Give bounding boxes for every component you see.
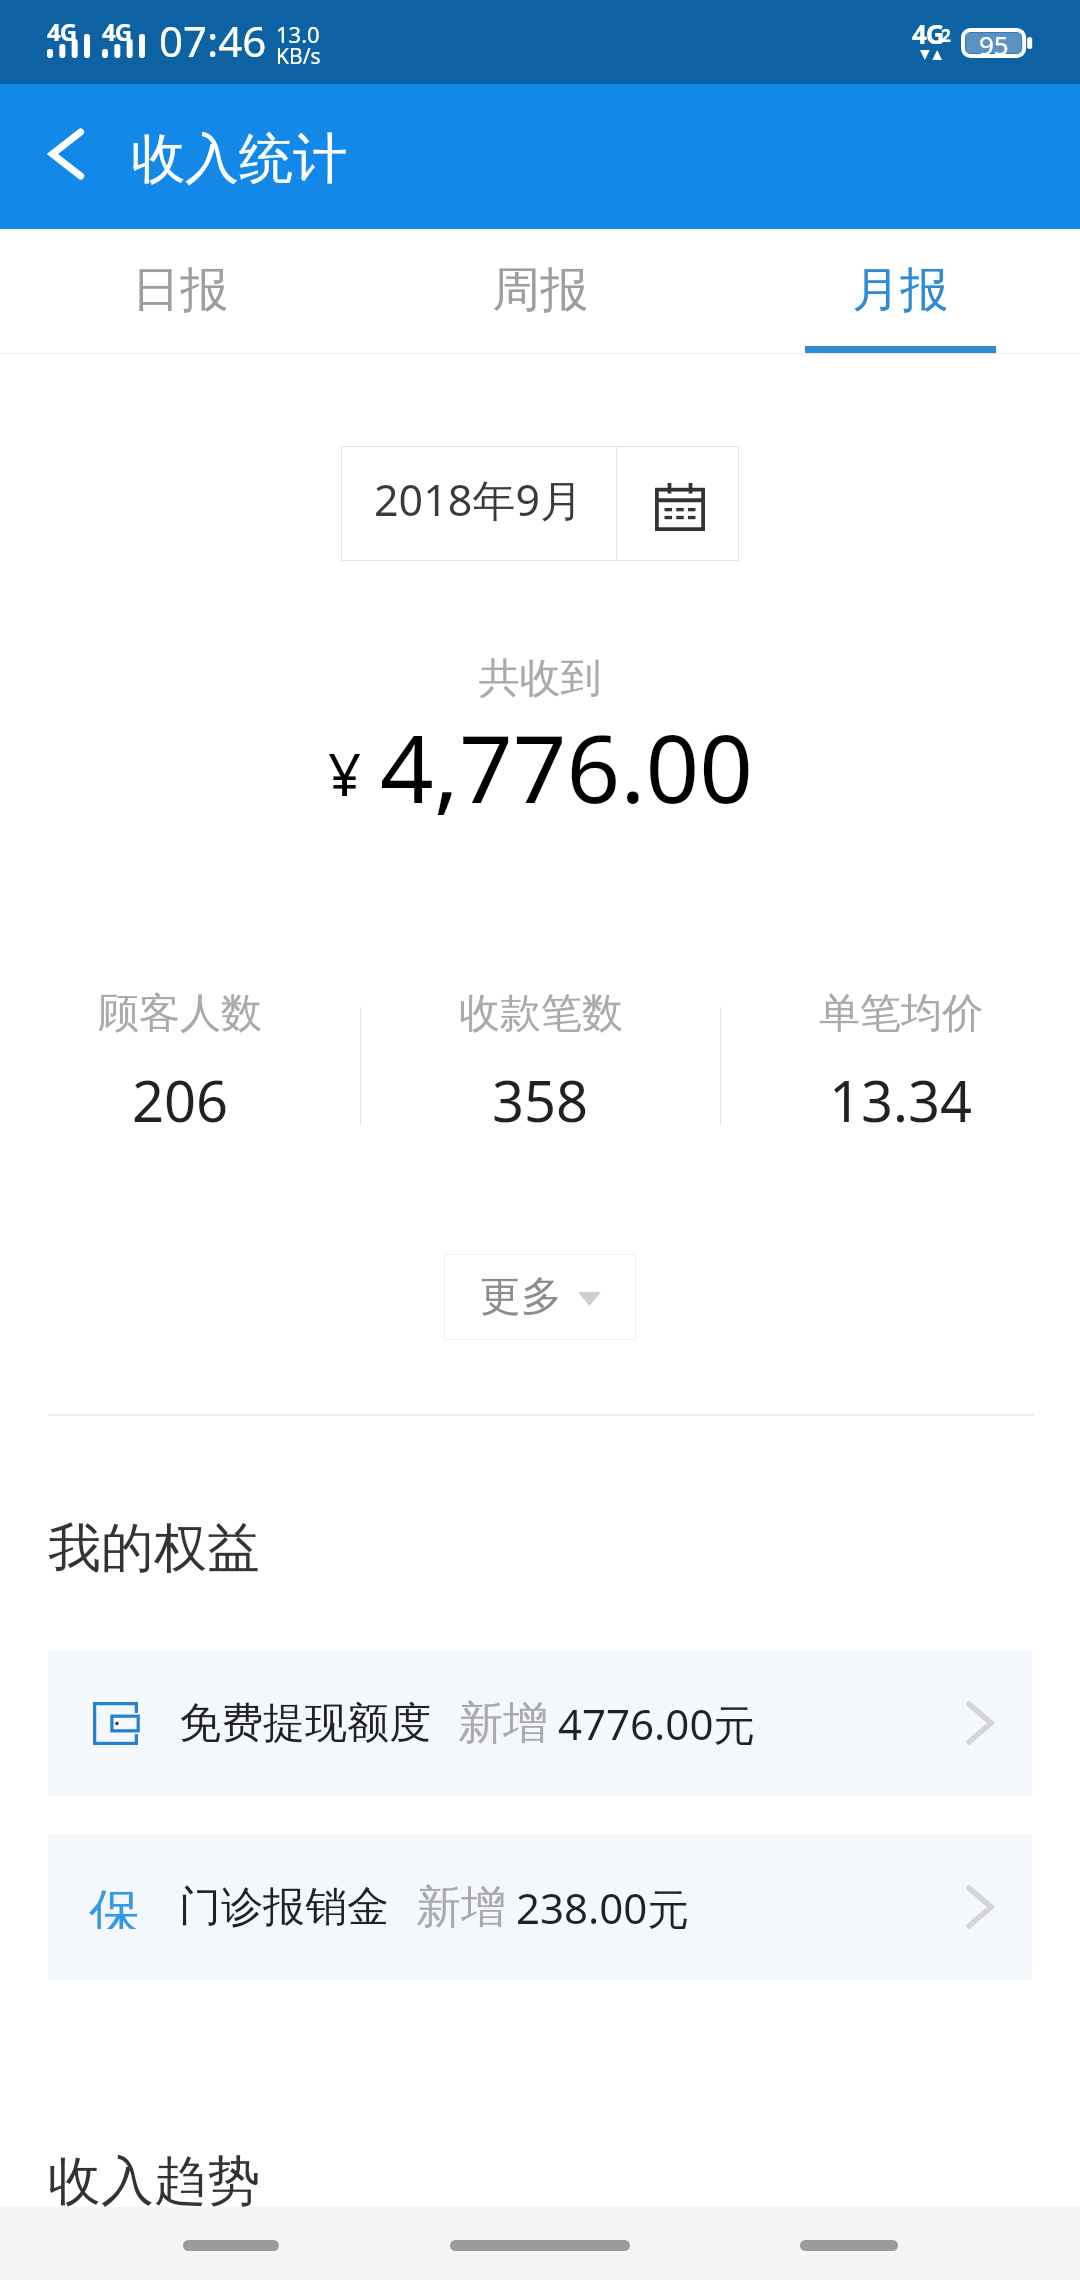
staticText: KB/s: [276, 42, 321, 71]
staticText: 周报: [492, 260, 588, 320]
button[interactable]: 单笔均价: [721, 986, 1080, 1146]
staticText: 206: [132, 1062, 229, 1138]
staticText: 更多: [480, 1271, 562, 1323]
staticText: 4G: [912, 16, 944, 51]
button[interactable]: 月报: [720, 229, 1080, 354]
staticText: 07:46: [159, 12, 267, 69]
staticText: 4G: [102, 15, 132, 48]
button[interactable]: Recent apps: [800, 2240, 898, 2251]
staticText: 4776.00元: [558, 1695, 756, 1752]
staticText: 2018年9月: [374, 470, 583, 529]
staticText: 358: [492, 1062, 589, 1138]
staticText: 保: [89, 1881, 137, 1929]
staticText: 4G: [47, 15, 77, 48]
staticText: 我的权益: [48, 1515, 260, 1582]
staticText: 4,776.00: [380, 703, 753, 831]
button[interactable]: 收款笔数: [361, 986, 720, 1146]
staticText: 单笔均价: [819, 988, 983, 1040]
button[interactable]: 周报: [360, 229, 720, 354]
button[interactable]: Pick month: [617, 446, 739, 561]
staticText: 新增: [416, 1879, 506, 1936]
staticText: ¥: [328, 734, 362, 813]
staticText: 收款笔数: [459, 988, 623, 1040]
staticText: 门诊报销金: [179, 1881, 389, 1934]
staticText: 日报: [132, 260, 228, 320]
staticText: 顾客人数: [98, 988, 262, 1040]
staticText: 13.34: [829, 1062, 973, 1138]
button[interactable]: 保: [48, 1834, 1032, 1980]
staticText: 月报: [852, 260, 948, 320]
button[interactable]: 更多: [444, 1254, 636, 1340]
other: Battery 95 percent: [961, 28, 1033, 58]
staticText: 收入统计: [131, 125, 347, 193]
staticText: 95: [979, 27, 1009, 57]
staticText: 13.0: [276, 19, 320, 49]
staticText: 238.00元: [516, 1879, 690, 1936]
staticText: 新增: [458, 1695, 548, 1752]
button[interactable]: 2018年9月: [341, 446, 616, 561]
button[interactable]: Back: [0, 84, 124, 229]
button[interactable]: 日报: [0, 229, 360, 354]
button[interactable]: Home: [450, 2240, 630, 2251]
staticText: 收入趋势: [48, 2148, 260, 2215]
staticText: 共收到: [0, 653, 1080, 705]
staticText: 免费提现额度: [179, 1697, 431, 1750]
button[interactable]: 免费提现额度: [48, 1650, 1032, 1796]
button[interactable]: Back: [183, 2240, 279, 2251]
staticText: 2: [941, 24, 951, 47]
button[interactable]: 顾客人数: [0, 986, 360, 1146]
